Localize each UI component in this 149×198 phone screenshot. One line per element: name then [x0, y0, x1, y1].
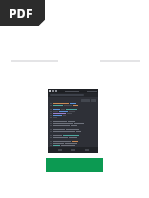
staticText: PDF — [9, 5, 34, 21]
button[interactable]: Document preview — [48, 89, 98, 153]
button[interactable]: PDF document — [0, 0, 45, 26]
